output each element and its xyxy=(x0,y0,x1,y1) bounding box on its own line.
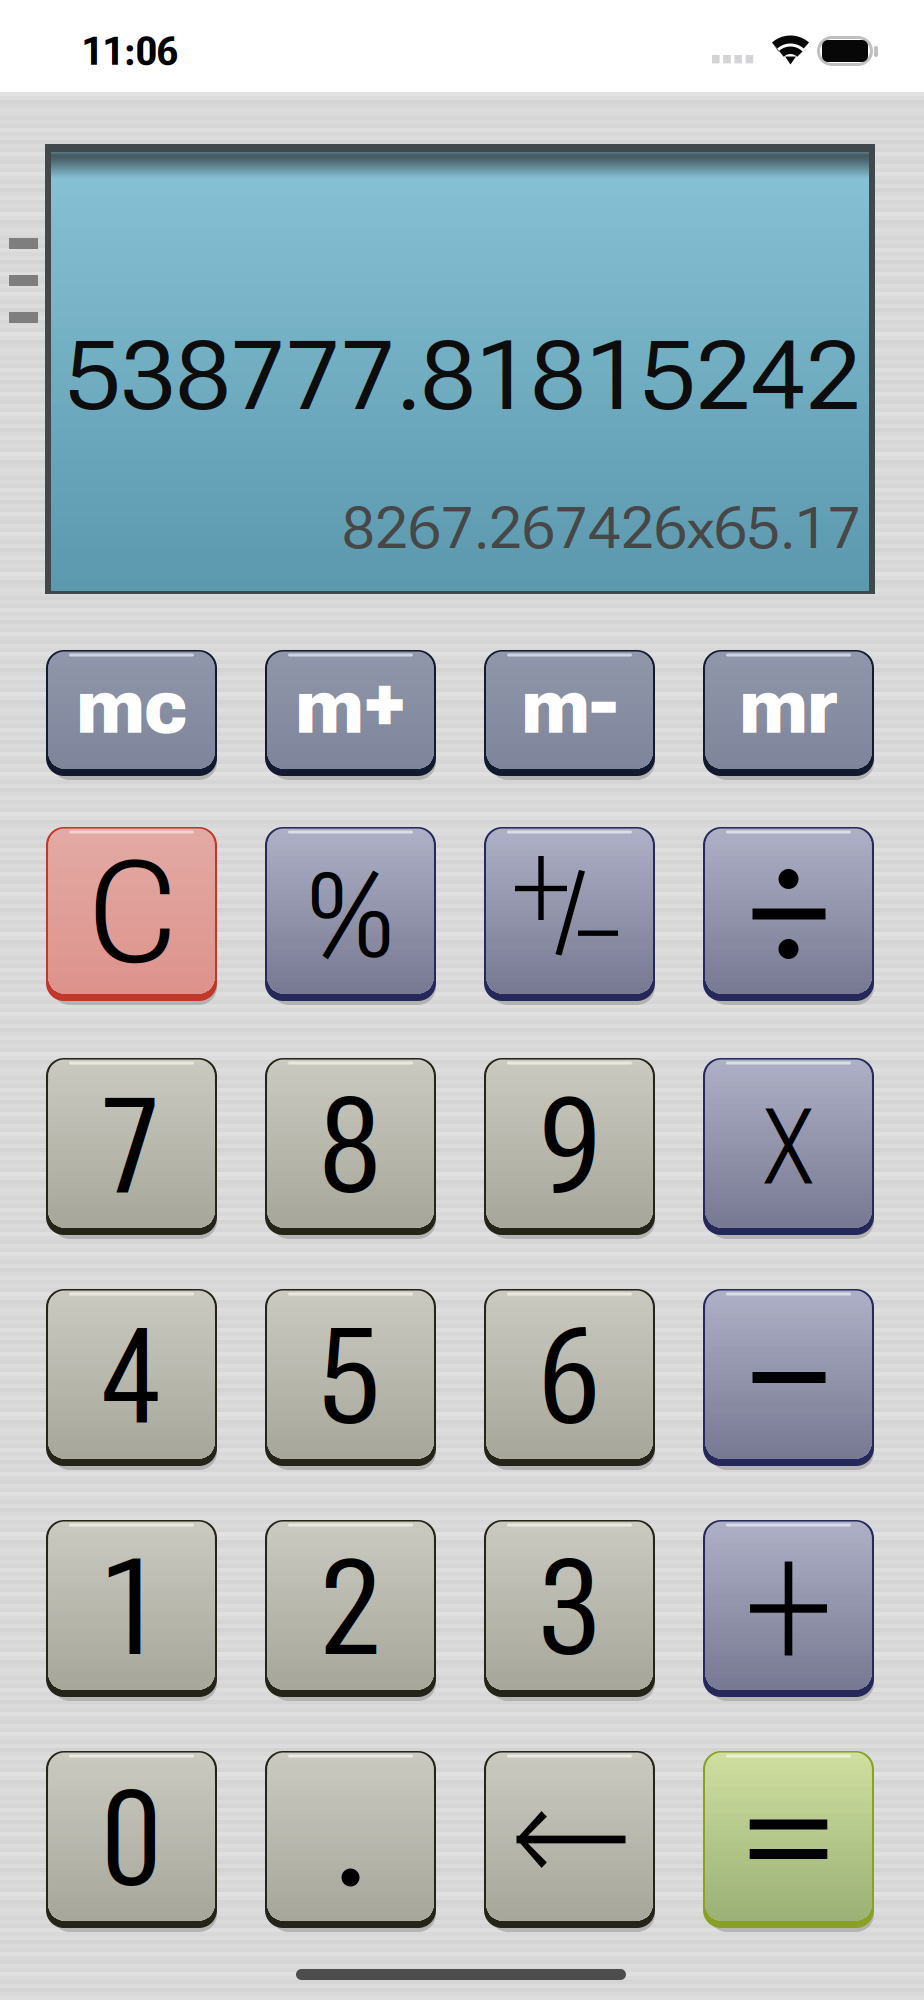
staticText: 9 xyxy=(541,1068,597,1225)
staticText: mc xyxy=(76,655,186,753)
staticText: mr xyxy=(739,655,837,753)
button[interactable]: 2 xyxy=(265,1520,436,1697)
staticText: % xyxy=(308,849,392,985)
staticText: 0 xyxy=(103,1761,159,1918)
staticText: 5 xyxy=(322,1299,378,1456)
staticText: X xyxy=(764,1086,812,1209)
button[interactable]: Backspace xyxy=(484,1751,655,1928)
button[interactable]: 8 xyxy=(265,1058,436,1235)
button[interactable]: Equals xyxy=(703,1751,874,1928)
button[interactable]: m- xyxy=(484,650,655,776)
button[interactable]: Decimal point xyxy=(265,1751,436,1928)
button[interactable]: 1 xyxy=(46,1520,217,1697)
button[interactable]: Clear xyxy=(46,827,217,1001)
button[interactable]: Minus xyxy=(703,1289,874,1466)
button[interactable]: 4 xyxy=(46,1289,217,1466)
staticText: 8 xyxy=(322,1068,378,1225)
staticText: 11:06 xyxy=(82,29,178,74)
staticText: 6 xyxy=(541,1299,597,1456)
button[interactable]: Multiply xyxy=(703,1058,874,1235)
button[interactable]: 0 xyxy=(46,1751,217,1928)
staticText: 8267.267426x65.17 xyxy=(342,496,861,562)
staticText: 3 xyxy=(541,1530,597,1687)
button[interactable]: Divide xyxy=(703,827,874,1001)
staticText: m+ xyxy=(295,655,405,753)
button[interactable]: Percent xyxy=(265,827,436,1001)
staticText: 2 xyxy=(322,1530,378,1687)
staticText: 1 xyxy=(103,1530,159,1687)
button[interactable]: mc xyxy=(46,650,217,776)
staticText: 4 xyxy=(103,1299,159,1456)
button[interactable]: Plus minus xyxy=(484,827,655,1001)
button[interactable]: 9 xyxy=(484,1058,655,1235)
staticText: 538777.81815242 xyxy=(66,320,861,432)
staticText: C xyxy=(90,831,173,997)
button[interactable]: mr xyxy=(703,650,874,776)
button[interactable]: m+ xyxy=(265,650,436,776)
button[interactable]: 6 xyxy=(484,1289,655,1466)
button[interactable]: 3 xyxy=(484,1520,655,1697)
staticText: 7 xyxy=(103,1068,159,1225)
button[interactable]: Plus xyxy=(703,1520,874,1697)
button[interactable]: 5 xyxy=(265,1289,436,1466)
staticText: m- xyxy=(521,655,617,753)
button[interactable]: 7 xyxy=(46,1058,217,1235)
